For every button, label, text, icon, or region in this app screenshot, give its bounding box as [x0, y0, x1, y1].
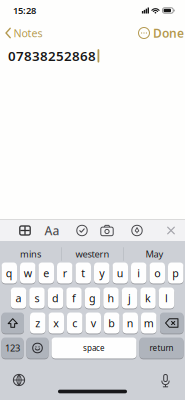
- button[interactable]: r: [57, 262, 72, 283]
- staticText: k: [145, 291, 151, 305]
- staticText: n: [127, 316, 134, 330]
- button[interactable]: m: [141, 312, 156, 333]
- staticText: e: [43, 266, 49, 280]
- button[interactable]: y: [94, 262, 109, 283]
- button[interactable]: western: [62, 248, 123, 260]
- staticText: g: [89, 291, 96, 305]
- staticText: c: [72, 316, 77, 330]
- button[interactable]: t: [75, 262, 91, 283]
- staticText: b: [108, 316, 115, 330]
- button[interactable]: u: [112, 262, 128, 283]
- staticText: o: [154, 266, 160, 280]
- button[interactable]: f: [66, 287, 82, 308]
- staticText: May: [145, 248, 163, 260]
- staticText: 07838252868: [8, 47, 96, 65]
- button[interactable]: e: [38, 262, 54, 283]
- button[interactable]: Delete: [160, 312, 183, 333]
- button[interactable]: s: [29, 287, 45, 308]
- button[interactable]: b: [104, 312, 119, 333]
- button[interactable]: w: [20, 262, 35, 283]
- button[interactable]: space: [51, 337, 136, 358]
- staticText: q: [6, 266, 13, 280]
- button[interactable]: n: [122, 312, 138, 333]
- staticText: mins: [20, 248, 41, 260]
- button[interactable]: mins: [0, 248, 61, 260]
- staticText: m: [144, 316, 154, 330]
- staticText: 15:28: [13, 4, 36, 17]
- staticText: western: [75, 248, 109, 260]
- button[interactable]: Done: [149, 25, 185, 41]
- staticText: r: [63, 266, 67, 280]
- button[interactable]: May: [124, 248, 185, 260]
- button[interactable]: p: [168, 262, 183, 283]
- button[interactable]: i: [131, 262, 146, 283]
- button[interactable]: More options: [138, 27, 149, 38]
- button[interactable]: Dismiss keyboard: [167, 226, 175, 235]
- button[interactable]: Checklist: [76, 225, 87, 236]
- button[interactable]: a: [11, 287, 26, 308]
- button[interactable]: Next keyboard: [13, 374, 25, 386]
- staticText: Done: [153, 25, 184, 41]
- button[interactable]: Insert photo: [100, 225, 113, 236]
- staticText: Notes: [13, 26, 42, 40]
- staticText: w: [24, 266, 32, 280]
- button[interactable]: Dictation: [161, 375, 170, 387]
- button[interactable]: v: [85, 312, 101, 333]
- staticText: x: [53, 316, 59, 330]
- staticText: h: [107, 291, 114, 305]
- staticText: s: [34, 291, 39, 305]
- staticText: y: [99, 266, 104, 280]
- button[interactable]: 123: [1, 337, 23, 358]
- staticText: p: [172, 266, 179, 280]
- button[interactable]: Notes: [0, 26, 42, 40]
- button[interactable]: k: [140, 287, 156, 308]
- staticText: f: [72, 291, 76, 305]
- staticText: 123: [5, 342, 20, 354]
- staticText: l: [165, 291, 168, 305]
- button[interactable]: d: [48, 287, 63, 308]
- button[interactable]: q: [1, 262, 17, 283]
- staticText: i: [137, 266, 140, 280]
- staticText: Aa: [44, 222, 59, 238]
- button[interactable]: x: [48, 312, 64, 333]
- staticText: u: [117, 266, 124, 280]
- staticText: j: [128, 291, 131, 305]
- button[interactable]: Text formatting: [44, 222, 59, 238]
- button[interactable]: c: [67, 312, 82, 333]
- button[interactable]: return: [139, 337, 183, 358]
- button[interactable]: Markup: [131, 225, 142, 236]
- button[interactable]: z: [30, 312, 45, 333]
- staticText: t: [81, 266, 85, 280]
- staticText: v: [91, 316, 96, 330]
- button[interactable]: Shift: [1, 312, 24, 333]
- staticText: z: [35, 316, 40, 330]
- staticText: d: [52, 291, 59, 305]
- staticText: space: [83, 343, 105, 353]
- staticText: return: [149, 343, 173, 353]
- staticText: a: [15, 291, 21, 305]
- button[interactable]: Insert table: [19, 225, 30, 236]
- button[interactable]: g: [85, 287, 100, 308]
- button[interactable]: o: [149, 262, 165, 283]
- button[interactable]: h: [103, 287, 119, 308]
- button[interactable]: j: [122, 287, 137, 308]
- button[interactable]: Emoji: [26, 337, 48, 358]
- button[interactable]: l: [159, 287, 174, 308]
